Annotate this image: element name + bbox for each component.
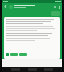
button[interactable]: More options: [57, 5, 61, 9]
button[interactable]: [14, 5, 53, 8]
button[interactable]: [51, 11, 60, 16]
button[interactable]: Back: [3, 4, 8, 9]
button[interactable]: [10, 53, 18, 56]
button[interactable]: Attach: [6, 53, 9, 56]
button[interactable]: Contact avatar: [9, 5, 13, 9]
button[interactable]: [19, 53, 27, 56]
button[interactable]: Call: [53, 5, 57, 9]
